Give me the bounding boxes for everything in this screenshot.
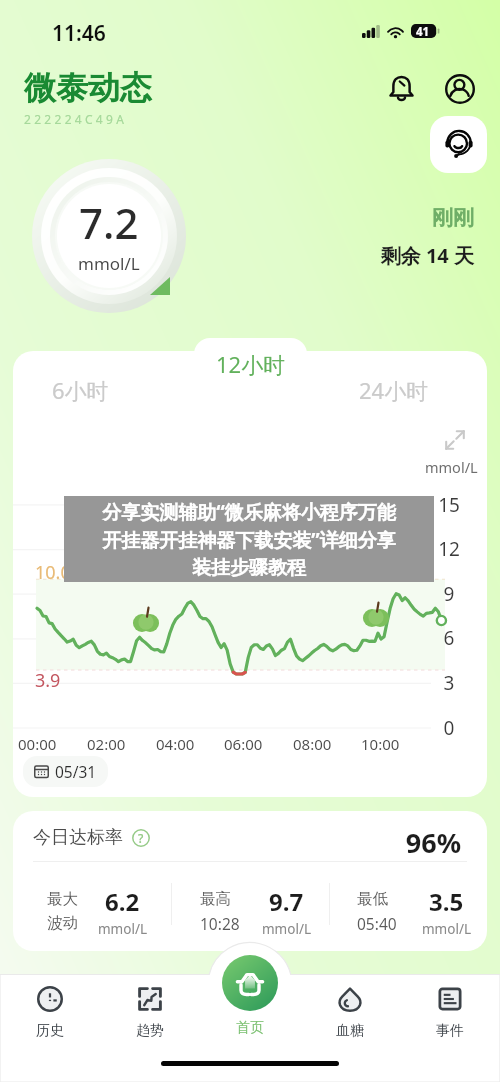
button[interactable]: 血糖	[308, 986, 392, 1040]
staticText: 血糖	[336, 1022, 364, 1040]
staticText: 10.0	[35, 560, 71, 585]
staticText: 最低	[357, 889, 388, 909]
staticText: 08:00	[293, 734, 332, 754]
button[interactable]: Profile	[442, 71, 478, 107]
staticText: 最高	[200, 889, 231, 909]
staticText: 刚刚	[300, 205, 474, 231]
staticText: 6.2	[105, 885, 140, 918]
staticText: mmol/L	[98, 920, 147, 938]
staticText: 222224C49A	[24, 111, 128, 127]
staticText: 10:00	[361, 734, 400, 754]
button[interactable]: 历史	[8, 986, 92, 1040]
staticText: 历史	[36, 1022, 64, 1040]
staticText: 10:28	[200, 913, 240, 934]
staticText: 00:00	[18, 734, 57, 754]
staticText: 7.2	[79, 194, 139, 251]
staticText: 12	[434, 536, 464, 562]
button[interactable]: Help	[132, 829, 150, 847]
staticText: 15	[434, 492, 464, 518]
staticText: mmol/L	[78, 252, 140, 275]
staticText: 3	[434, 670, 464, 696]
staticText: 剩余 14 天	[300, 242, 474, 269]
button[interactable]: 24小时	[359, 375, 429, 405]
staticText: mmol/L	[425, 457, 478, 477]
button[interactable]: Customer support	[430, 116, 487, 173]
staticText: 12小时	[216, 349, 286, 379]
staticText: 02:00	[87, 734, 126, 754]
staticText: mmol/L	[422, 920, 471, 938]
button[interactable]: Notifications	[383, 70, 419, 106]
button[interactable]: 6小时	[52, 375, 109, 405]
button[interactable]: Expand chart	[444, 429, 466, 451]
staticText: 今日达标率	[33, 826, 123, 849]
staticText: 06:00	[224, 734, 263, 754]
staticText: 最大	[47, 889, 78, 909]
staticText: 3.9	[35, 668, 61, 693]
staticText: ?	[138, 830, 144, 846]
staticText: 9.7	[269, 885, 304, 918]
staticText: mmol/L	[262, 920, 311, 938]
button[interactable]: 事件	[408, 986, 492, 1040]
button[interactable]: 12小时	[194, 338, 307, 389]
button[interactable]: Home	[222, 955, 278, 1011]
staticText: 05:40	[357, 913, 397, 934]
staticText: 趋势	[136, 1022, 164, 1040]
staticText: 05/31	[55, 761, 97, 782]
button[interactable]: 趋势	[108, 986, 192, 1040]
staticText: 波动	[47, 913, 78, 933]
staticText: 11:46	[52, 19, 106, 48]
staticText: 96%	[313, 824, 461, 861]
staticText: 9	[434, 581, 464, 607]
staticText: 6	[434, 625, 464, 651]
staticText: 首页	[236, 1019, 264, 1037]
button[interactable]: 05/31	[23, 756, 108, 787]
staticText: 41	[416, 24, 430, 38]
staticText: 分享实测辅助“微乐麻将小程序万能 开挂器开挂神器下载安装”详细分享 装挂步骤教程	[64, 499, 434, 580]
staticText: 事件	[436, 1022, 464, 1040]
staticText: 0	[434, 715, 464, 741]
staticText: 3.5	[429, 885, 464, 918]
staticText: 微泰动态	[24, 68, 152, 108]
staticText: 04:00	[156, 734, 195, 754]
